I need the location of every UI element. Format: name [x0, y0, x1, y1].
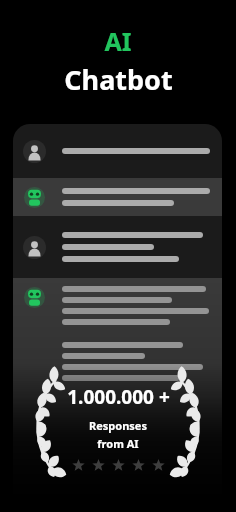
button[interactable]: User avatar — [13, 216, 222, 278]
staticText: 1.000.000 + — [67, 384, 170, 410]
staticText: Chatbot — [64, 61, 173, 98]
button[interactable]: AI avatar — [13, 278, 222, 494]
other: AI avatar — [24, 187, 45, 208]
button[interactable]: User avatar — [13, 124, 222, 178]
button[interactable]: AI avatar — [13, 178, 222, 216]
other: User avatar — [23, 140, 46, 163]
staticText: from AI — [97, 436, 139, 451]
other: User avatar — [23, 236, 46, 259]
staticText: AI — [104, 24, 132, 58]
other: AI avatar — [24, 287, 45, 308]
staticText: Responses — [89, 418, 147, 433]
